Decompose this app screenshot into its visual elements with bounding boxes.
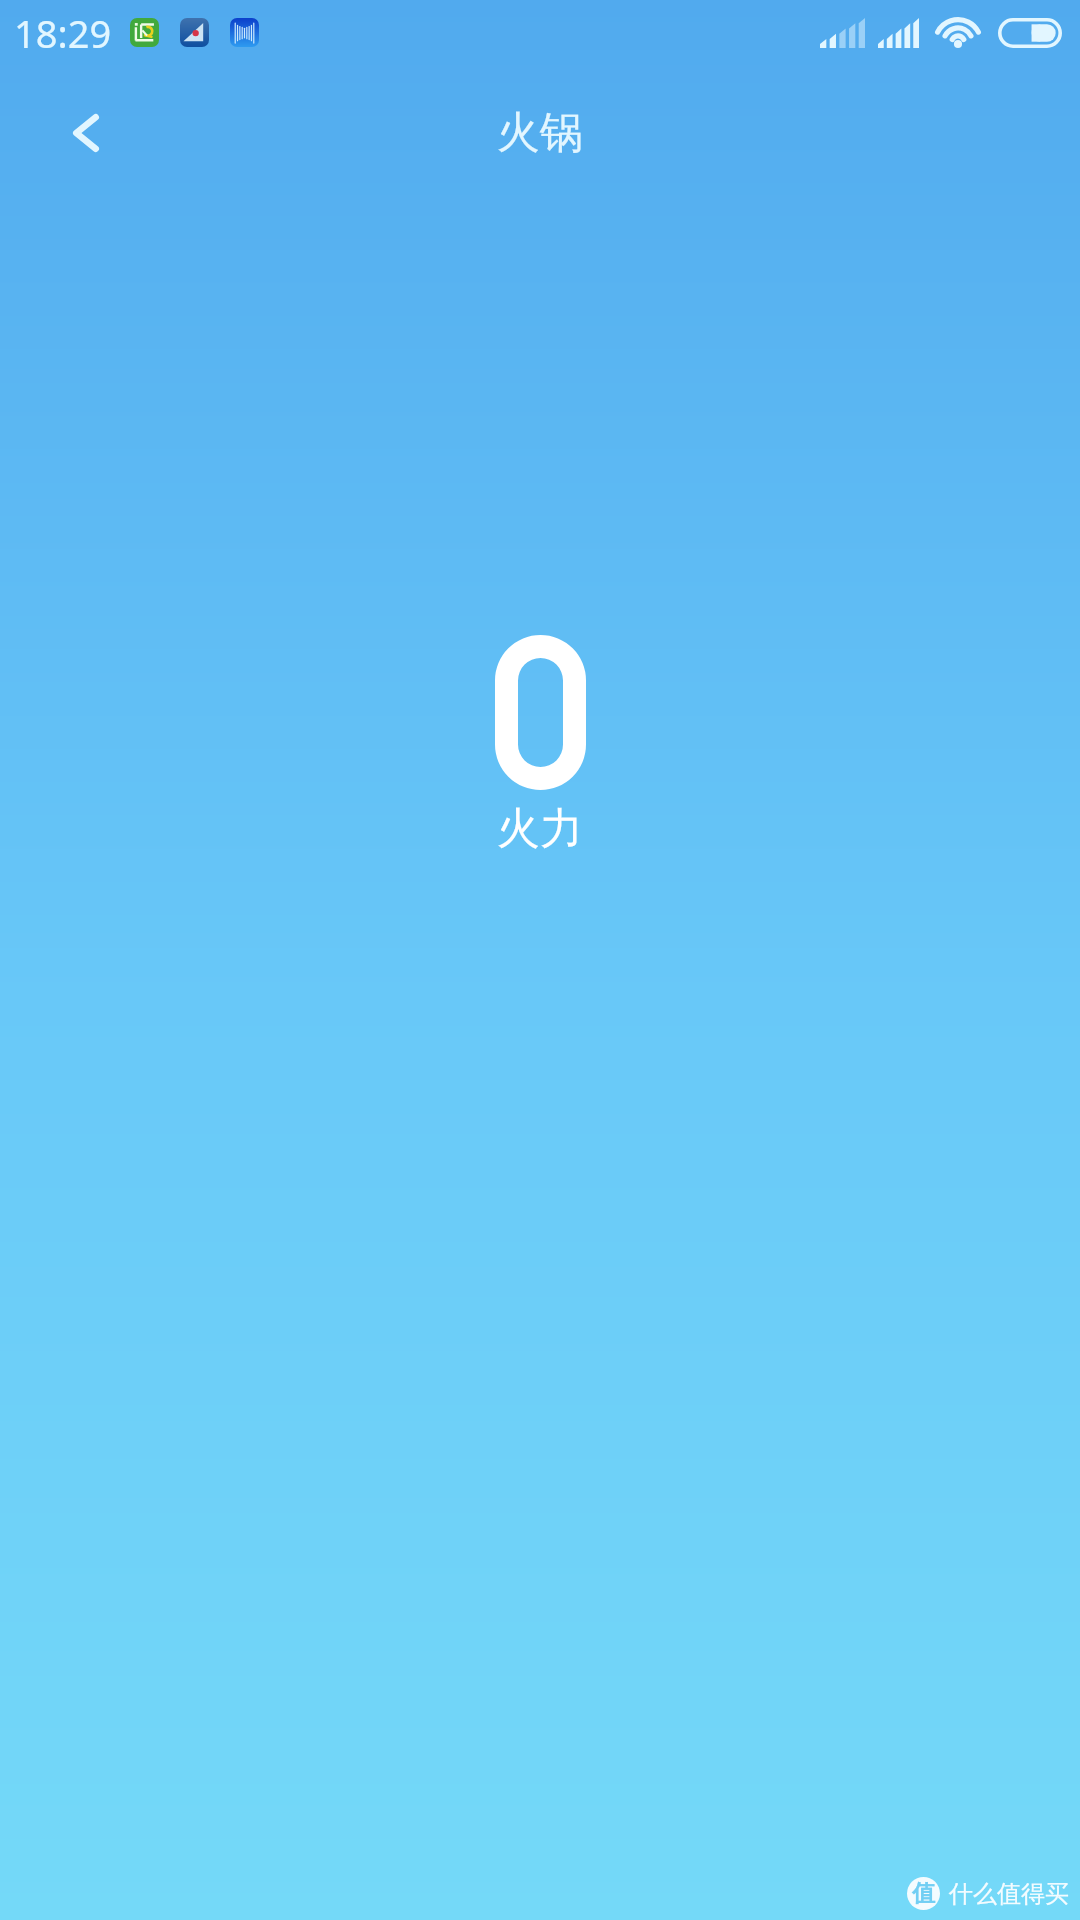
staticText: 值 [912, 1879, 935, 1908]
staticText: 火锅 [497, 106, 583, 160]
staticText: 火力 [497, 802, 583, 856]
staticText: 18:29 [14, 7, 112, 59]
button[interactable]: Back [38, 85, 134, 181]
button[interactable]: 值 [907, 1877, 1069, 1910]
staticText: 什么值得买 [949, 1879, 1069, 1909]
button[interactable]: 火力 [0, 635, 1080, 856]
